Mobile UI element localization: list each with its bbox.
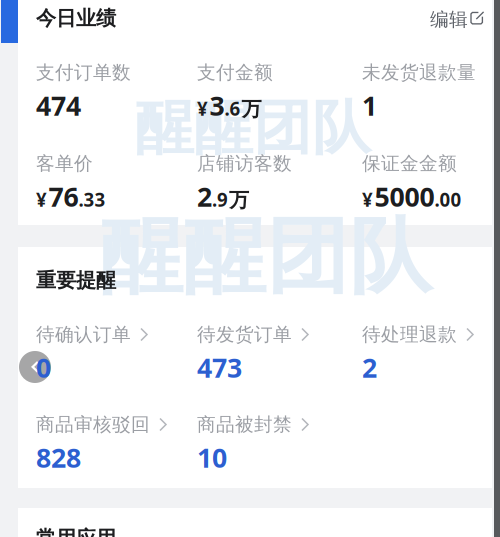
staticText: 10 [197, 440, 227, 475]
staticText: 0 [36, 350, 51, 385]
staticText: 编辑 [430, 8, 468, 31]
button[interactable]: Back [19, 351, 51, 383]
button[interactable]: 商品审核驳回 [36, 416, 167, 475]
button[interactable]: 未发货退款量 [362, 64, 476, 123]
staticText: 待处理退款 [362, 323, 457, 346]
staticText: 未发货退款量 [362, 61, 476, 84]
staticText: 474 [36, 88, 81, 123]
staticText: 76 [48, 179, 78, 214]
staticText: .9 [212, 187, 228, 212]
staticText: 473 [197, 350, 242, 385]
staticText: 支付订单数 [36, 61, 131, 84]
staticText: 2 [362, 350, 377, 385]
staticText: .00 [434, 187, 461, 212]
staticText: ¥ [36, 187, 47, 212]
button[interactable]: 商品被封禁 [197, 416, 309, 475]
staticText: 待发货订单 [197, 323, 292, 346]
button[interactable]: 保证金金额 [362, 155, 461, 214]
staticText: ¥ [362, 187, 373, 212]
button[interactable]: 待发货订单 [197, 326, 309, 385]
staticText: .33 [78, 187, 105, 212]
staticText: 商品被封禁 [197, 413, 292, 436]
staticText: 5000 [374, 179, 434, 214]
staticText: 今日业绩 [36, 6, 116, 31]
staticText: 支付金额 [197, 61, 273, 84]
staticText: ¥ [197, 96, 208, 121]
staticText: 万 [229, 188, 249, 212]
staticText: 保证金金额 [362, 152, 457, 175]
button[interactable]: 编辑 [428, 4, 486, 35]
staticText: 常用应用 [36, 526, 116, 537]
button[interactable]: 支付订单数 [36, 64, 131, 123]
button[interactable]: 客单价 [36, 155, 105, 214]
staticText: 3 [209, 88, 224, 123]
staticText: .6 [224, 96, 240, 121]
staticText: 2 [197, 179, 212, 214]
staticText: 醒醒团队 [135, 92, 371, 164]
staticText: 828 [36, 440, 81, 475]
staticText: 客单价 [36, 152, 93, 175]
staticText: 万 [241, 97, 261, 121]
staticText: 醒醒团队 [100, 206, 432, 307]
button[interactable]: 待处理退款 [362, 326, 474, 385]
staticText: 商品审核驳回 [36, 413, 150, 436]
staticText: 1 [362, 88, 377, 123]
staticText: 重要提醒 [36, 268, 116, 293]
button[interactable]: 支付金额 [197, 64, 273, 123]
button[interactable]: 待确认订单 [36, 326, 148, 385]
staticText: 待确认订单 [36, 323, 131, 346]
button[interactable]: 店铺访客数 [197, 155, 292, 214]
staticText: 店铺访客数 [197, 152, 292, 175]
